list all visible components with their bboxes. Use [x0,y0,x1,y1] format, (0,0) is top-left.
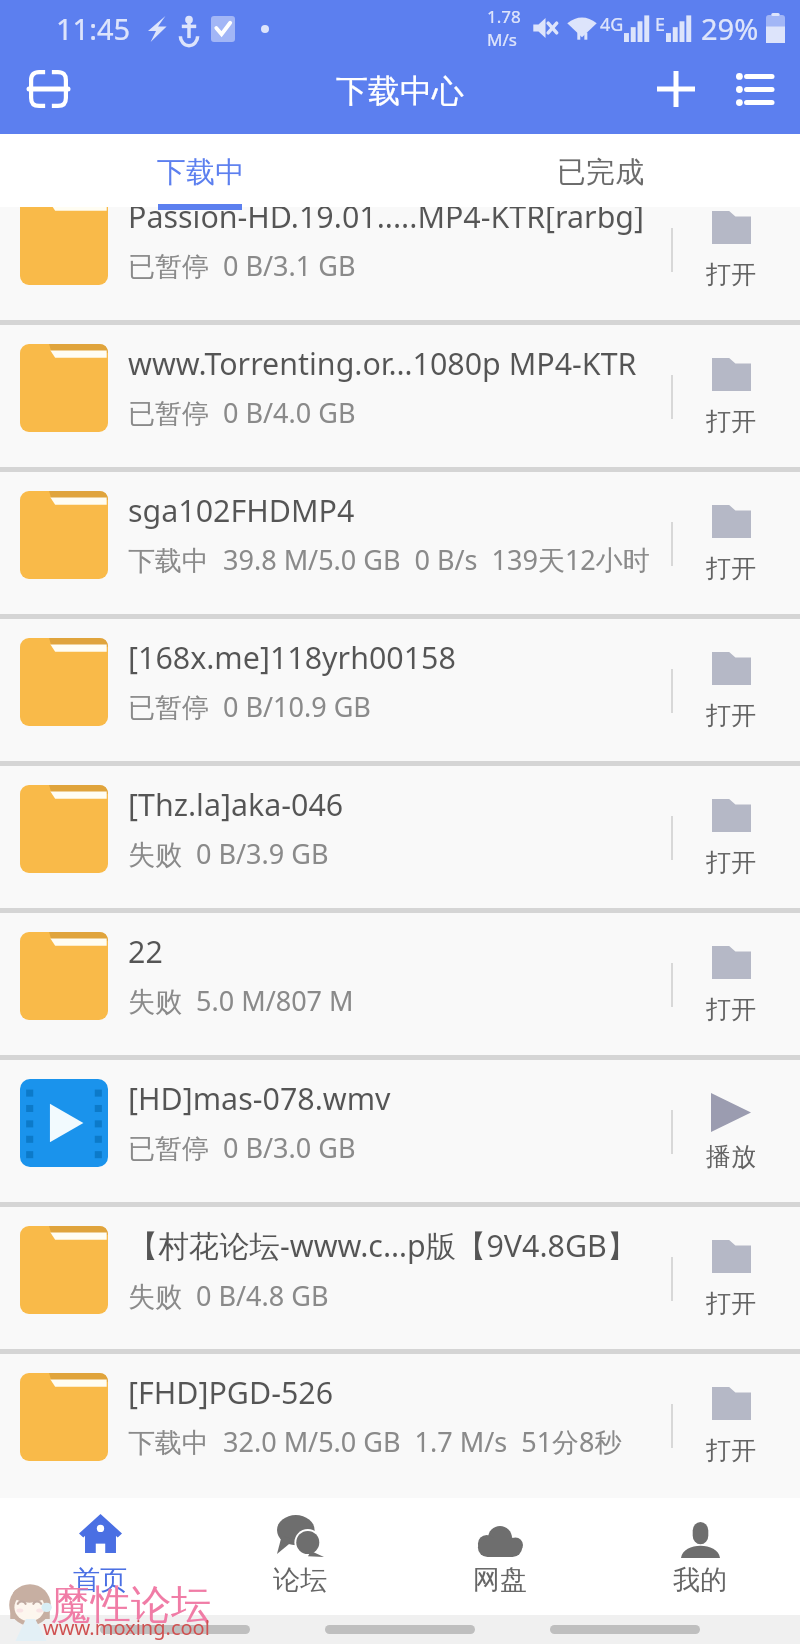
staticText: 打开 [706,1288,756,1319]
staticText: 已暂停 0 B/3.0 GB [128,1129,356,1166]
button[interactable]: [Thz.la]aka-046 [0,766,800,908]
staticText: 打开 [706,406,756,437]
staticText: 论坛 [273,1563,327,1597]
button[interactable]: [FHD]PGD-526 [0,1354,800,1469]
button[interactable]: 打开 [686,207,776,320]
button[interactable]: 22 [0,913,800,1055]
staticText: 下载中 39.8 M/5.0 GB 0 B/s 139天12小时 [128,541,650,578]
staticText: 我的 [673,1563,727,1597]
staticText: M/s [487,28,517,51]
staticText: 已完成 [557,154,644,191]
staticText: 11:45 [56,9,131,48]
staticText: 失败 0 B/4.8 GB [128,1277,329,1314]
button[interactable]: 论坛 [200,1498,400,1615]
staticText: sga102FHDMP4 [128,490,355,531]
staticText: E [655,12,666,37]
button[interactable]: Menu [722,57,786,121]
staticText: 打开 [706,994,756,1025]
button[interactable]: 我的 [600,1498,800,1615]
staticText: 【村花论坛-www.c…p版【9V4.8GB】 [128,1225,638,1267]
staticText: 打开 [706,259,756,290]
button[interactable]: [168x.me]118yrh00158 [0,619,800,761]
staticText: [Thz.la]aka-046 [128,784,344,825]
button[interactable]: Add [644,57,708,121]
staticText: 已暂停 0 B/10.9 GB [128,688,371,725]
button[interactable]: www.Torrenting.or…1080p MP4-KTR [0,325,800,467]
button[interactable]: Navigation [325,1625,475,1634]
button[interactable]: 打开 [686,766,776,908]
staticText: [168x.me]118yrh00158 [128,637,456,678]
button[interactable]: 网盘 [400,1498,600,1615]
button[interactable]: 打开 [686,619,776,761]
staticText: 1.78 [487,5,521,28]
staticText: 下载中 32.0 M/5.0 GB 1.7 M/s 51分8秒 [128,1423,622,1460]
staticText: 打开 [706,1435,756,1466]
staticText: 播放 [706,1141,756,1172]
staticText: 网盘 [473,1563,527,1597]
staticText: 下载中心 [336,71,464,111]
staticText: [FHD]PGD-526 [128,1372,334,1413]
button[interactable]: 打开 [686,472,776,614]
staticText: [HD]mas-078.wmv [128,1078,391,1119]
staticText: 22 [128,931,163,972]
staticText: 打开 [706,700,756,731]
button[interactable]: 打开 [686,1207,776,1349]
staticText: 4G [600,12,624,37]
staticText: 已暂停 0 B/3.1 GB [128,247,356,284]
staticText: 已暂停 0 B/4.0 GB [128,394,356,431]
staticText: 打开 [706,847,756,878]
staticText: 魔性论坛 [51,1579,211,1629]
staticText: 下载中 [157,154,244,191]
button[interactable]: Scan [16,57,80,121]
staticText: www.Torrenting.or…1080p MP4-KTR [128,343,637,384]
button[interactable]: 播放 [686,1060,776,1202]
button[interactable]: sga102FHDMP4 [0,472,800,614]
staticText: 失败 0 B/3.9 GB [128,835,329,872]
button[interactable]: 已完成 [400,134,800,207]
button[interactable]: 打开 [686,325,776,467]
button[interactable]: 【村花论坛-www.c…p版【9V4.8GB】 [0,1207,800,1349]
button[interactable]: 打开 [686,913,776,1055]
staticText: 打开 [706,553,756,584]
button[interactable]: 下载中 [0,134,400,207]
button[interactable]: [HD]mas-078.wmv [0,1060,800,1202]
staticText: Passion-HD.19.01.....MP4-KTR[rarbg] [128,207,645,237]
button[interactable]: 首页 [0,1498,200,1615]
staticText: 29% [701,9,759,48]
staticText: 失败 5.0 M/807 M [128,982,354,1019]
staticText: www.moxing.cool [43,1614,210,1641]
button[interactable]: 打开 [686,1354,776,1469]
staticText: 首页 [73,1563,127,1597]
button[interactable]: Navigation [100,1625,250,1634]
button[interactable]: Passion-HD.19.01.....MP4-KTR[rarbg] [0,207,800,320]
button[interactable]: Navigation [550,1625,700,1634]
